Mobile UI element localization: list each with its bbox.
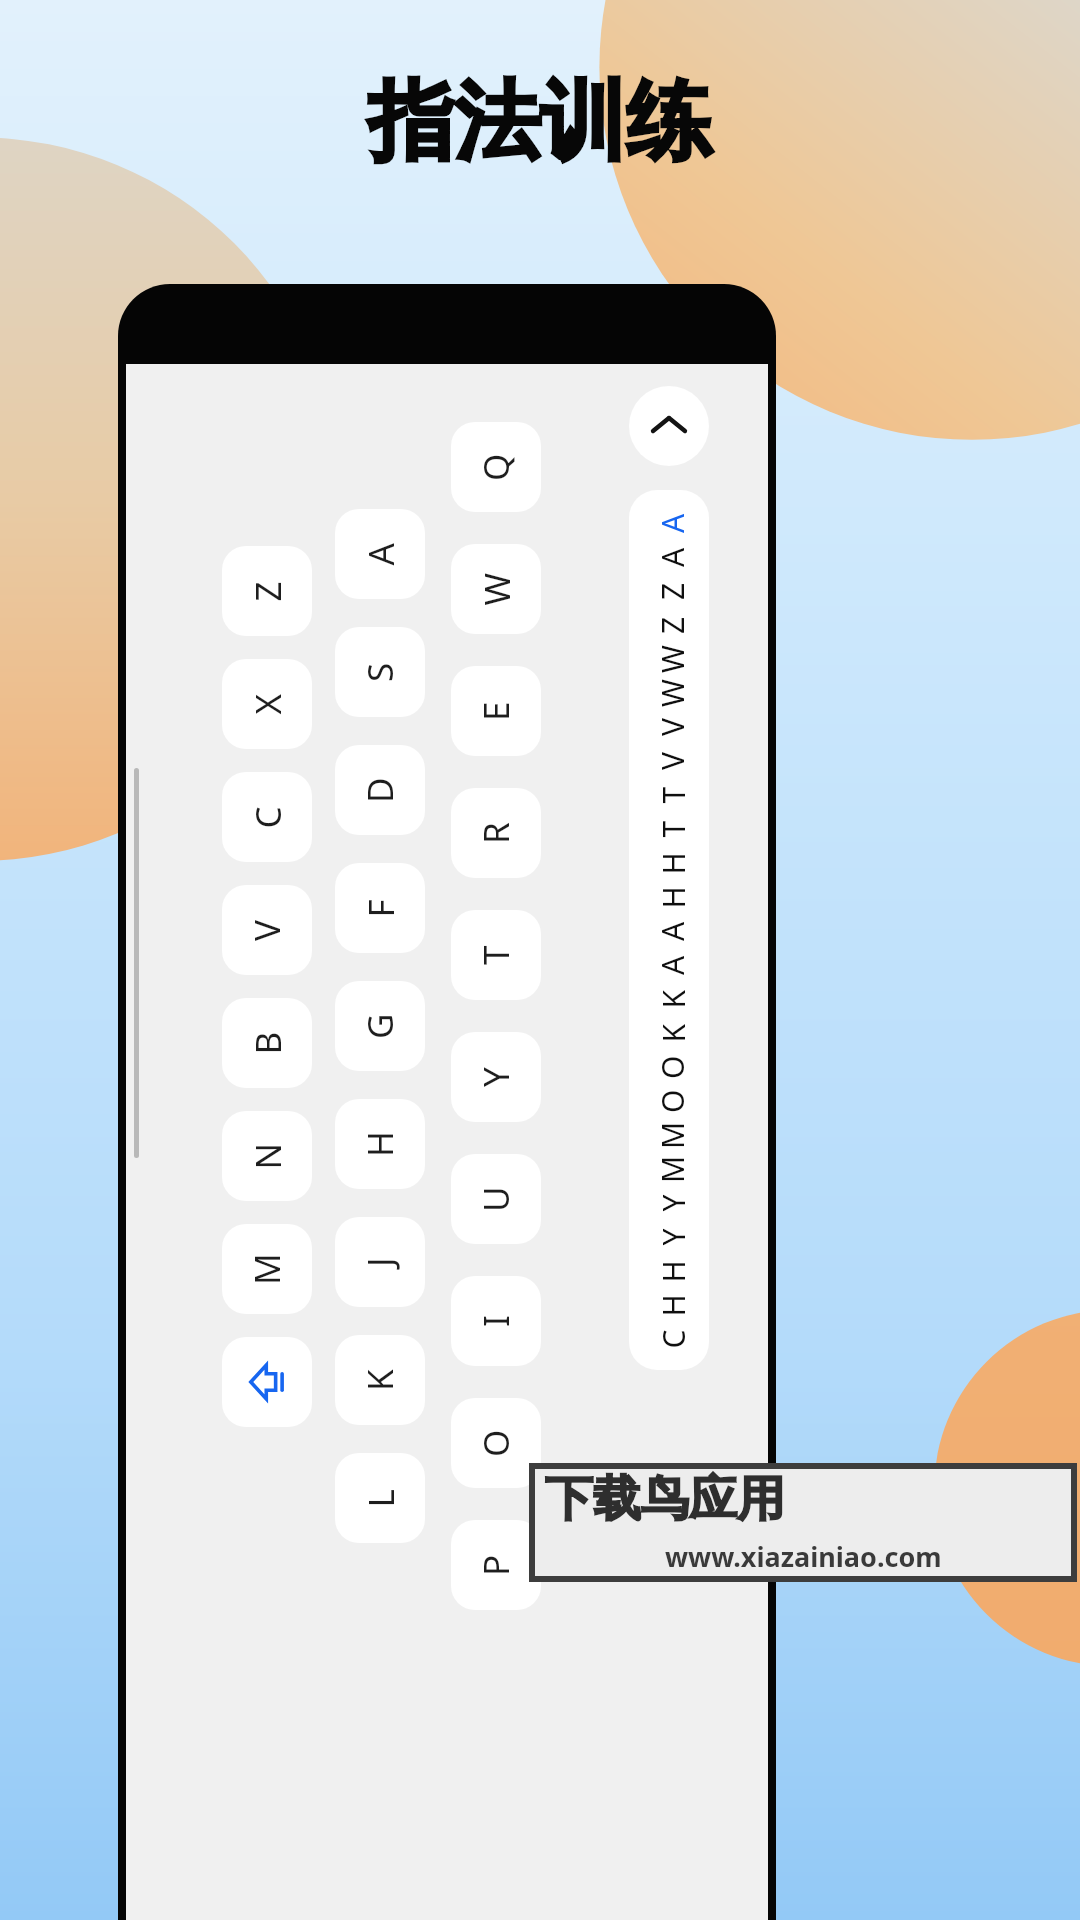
- staticText: X: [243, 693, 291, 714]
- staticText: T: [652, 820, 686, 837]
- staticText: P: [472, 1554, 520, 1576]
- staticText: W: [652, 679, 686, 707]
- staticText: H: [356, 1131, 404, 1157]
- button[interactable]: U: [451, 1154, 541, 1244]
- staticText: V: [243, 919, 291, 941]
- button[interactable]: Z: [222, 546, 312, 636]
- button[interactable]: D: [335, 745, 425, 835]
- staticText: M: [243, 1253, 291, 1285]
- staticText: O: [652, 1055, 686, 1079]
- staticText: W: [472, 572, 520, 605]
- staticText: Y: [652, 1194, 686, 1211]
- staticText: W: [652, 645, 686, 673]
- staticText: U: [472, 1186, 520, 1212]
- staticText: H: [652, 885, 686, 908]
- button[interactable]: H: [335, 1099, 425, 1189]
- staticText: 下载鸟应用: [545, 1469, 785, 1529]
- button[interactable]: I: [451, 1276, 541, 1366]
- button[interactable]: Q: [451, 422, 541, 512]
- button[interactable]: Shift: [222, 1337, 312, 1427]
- staticText: K: [652, 989, 686, 1008]
- staticText: A: [652, 955, 686, 975]
- staticText: T: [472, 945, 520, 965]
- button[interactable]: T: [451, 910, 541, 1000]
- staticText: Y: [472, 1067, 520, 1087]
- staticText: 指法训练: [368, 68, 712, 176]
- button[interactable]: L: [335, 1453, 425, 1543]
- staticText: V: [652, 752, 686, 770]
- staticText: E: [472, 701, 520, 721]
- button[interactable]: Collapse keyboard: [629, 386, 709, 466]
- button[interactable]: W: [451, 544, 541, 634]
- staticText: M: [652, 1155, 686, 1183]
- staticText: A: [652, 513, 686, 533]
- button[interactable]: M: [222, 1224, 312, 1314]
- staticText: J: [356, 1257, 404, 1267]
- staticText: H: [652, 1259, 686, 1282]
- staticText: H: [652, 851, 686, 874]
- button[interactable]: J: [335, 1217, 425, 1307]
- staticText: Q: [472, 453, 520, 481]
- staticText: S: [356, 662, 404, 682]
- button[interactable]: S: [335, 627, 425, 717]
- button[interactable]: O: [451, 1398, 541, 1488]
- staticText: D: [356, 777, 404, 803]
- staticText: Z: [652, 582, 686, 600]
- staticText: H: [652, 1293, 686, 1316]
- staticText: Z: [243, 580, 291, 601]
- staticText: G: [356, 1013, 404, 1039]
- staticText: R: [472, 822, 520, 844]
- button[interactable]: X: [222, 659, 312, 749]
- staticText: A: [652, 547, 686, 567]
- staticText: V: [652, 718, 686, 736]
- button[interactable]: B: [222, 998, 312, 1088]
- button[interactable]: C: [222, 772, 312, 862]
- button[interactable]: E: [451, 666, 541, 756]
- button[interactable]: A: [335, 509, 425, 599]
- staticText: C: [243, 805, 291, 828]
- staticText: O: [652, 1089, 686, 1113]
- button[interactable]: Y: [451, 1032, 541, 1122]
- button[interactable]: K: [335, 1335, 425, 1425]
- button[interactable]: A: [629, 490, 709, 1370]
- staticText: Y: [652, 1228, 686, 1245]
- staticText: K: [652, 1023, 686, 1042]
- button[interactable]: P: [451, 1520, 541, 1610]
- staticText: B: [243, 1031, 291, 1054]
- button[interactable]: R: [451, 788, 541, 878]
- staticText: M: [652, 1121, 686, 1149]
- staticText: I: [472, 1315, 520, 1327]
- staticText: C: [652, 1329, 686, 1348]
- staticText: K: [356, 1369, 404, 1391]
- staticText: O: [472, 1429, 520, 1457]
- staticText: A: [652, 921, 686, 941]
- staticText: www.xiazainiao.com: [665, 1538, 942, 1575]
- button[interactable]: V: [222, 885, 312, 975]
- button[interactable]: N: [222, 1111, 312, 1201]
- staticText: N: [243, 1142, 291, 1169]
- staticText: Z: [652, 616, 686, 634]
- button[interactable]: G: [335, 981, 425, 1071]
- staticText: T: [652, 786, 686, 803]
- staticText: A: [356, 542, 404, 565]
- staticText: L: [356, 1488, 404, 1507]
- button[interactable]: F: [335, 863, 425, 953]
- staticText: F: [356, 898, 404, 917]
